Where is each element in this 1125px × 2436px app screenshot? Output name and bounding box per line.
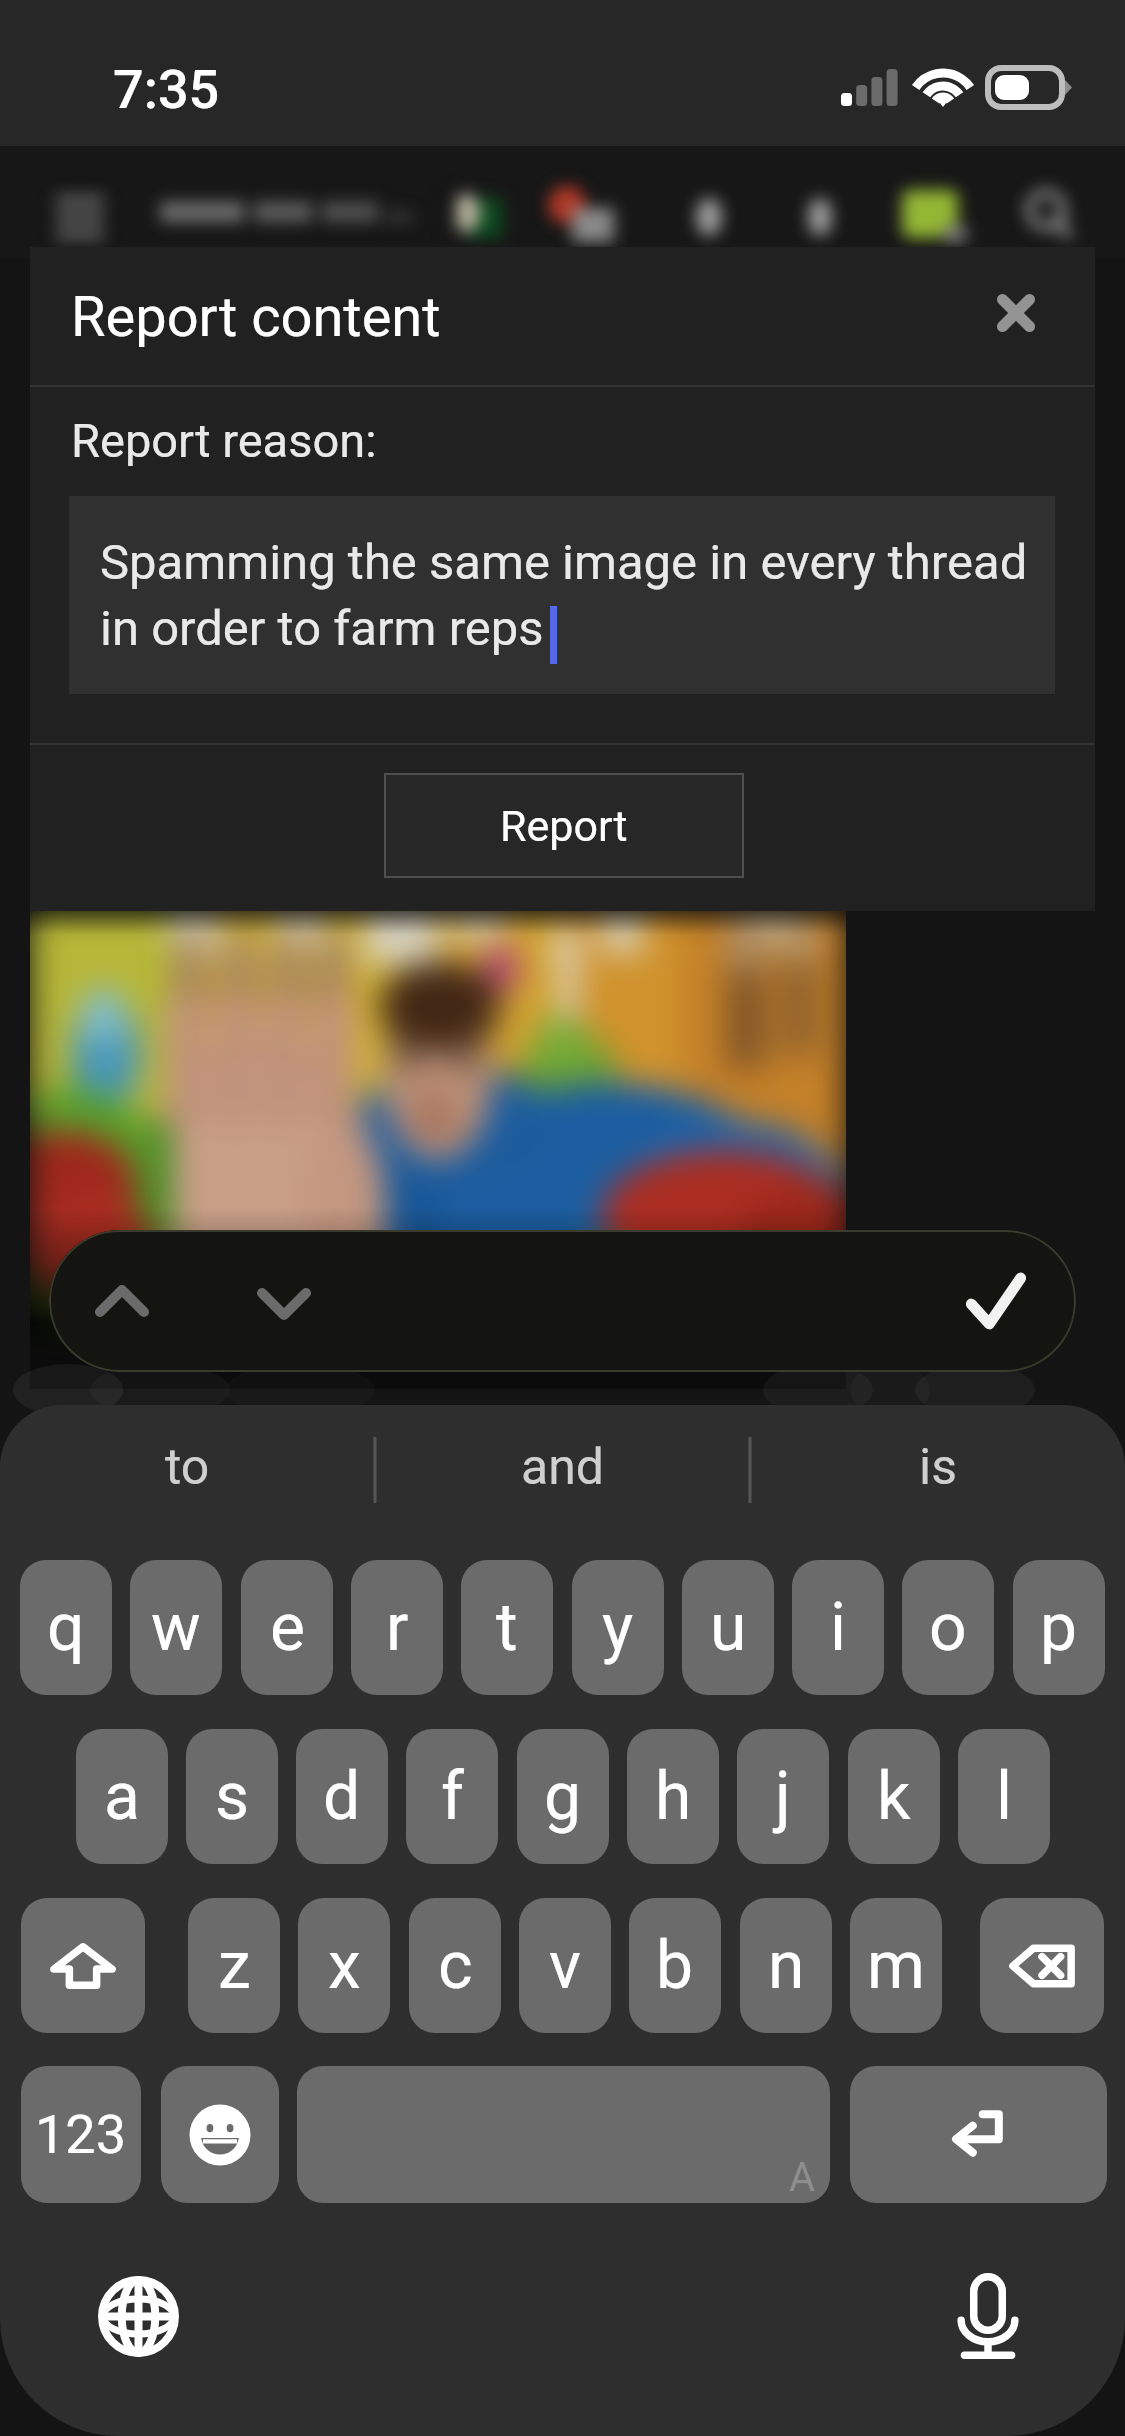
button[interactable]: Shift — [21, 1898, 145, 2033]
button[interactable]: 123 — [21, 2066, 141, 2203]
staticText: A — [789, 2154, 816, 2201]
staticText: g — [544, 1758, 582, 1835]
button[interactable]: e — [241, 1560, 333, 1695]
button[interactable]: a — [76, 1729, 168, 1864]
staticText: y — [602, 1589, 634, 1666]
button[interactable]: f — [406, 1729, 498, 1864]
button[interactable]: Voice input — [933, 2261, 1043, 2371]
button[interactable]: Done — [941, 1246, 1051, 1356]
staticText: o — [929, 1589, 967, 1666]
button[interactable]: x — [298, 1898, 390, 2033]
button[interactable]: Emoji — [161, 2066, 279, 2203]
staticText: h — [655, 1758, 692, 1835]
staticText: d — [323, 1758, 361, 1835]
button[interactable]: n — [740, 1898, 832, 2033]
staticText: v — [549, 1927, 581, 2004]
button[interactable]: p — [1013, 1560, 1105, 1695]
button[interactable]: o — [902, 1560, 994, 1695]
staticText: Report — [500, 801, 628, 851]
button[interactable]: u — [682, 1560, 774, 1695]
staticText: a — [104, 1758, 140, 1835]
button[interactable]: Close — [966, 263, 1066, 363]
button[interactable]: q — [20, 1560, 112, 1695]
button[interactable]: c — [409, 1898, 501, 2033]
button[interactable]: l — [958, 1729, 1050, 1864]
button[interactable]: k — [848, 1729, 940, 1864]
staticText: b — [656, 1927, 694, 2004]
button[interactable]: and — [375, 1405, 750, 1530]
staticText: z — [218, 1927, 251, 2004]
button[interactable]: Next — [229, 1249, 339, 1359]
staticText: 123 — [35, 2103, 127, 2166]
staticText: Report reason: — [71, 413, 377, 468]
staticText: and — [521, 1438, 605, 1497]
button[interactable]: t — [461, 1560, 553, 1695]
button[interactable]: v — [519, 1898, 611, 2033]
staticText: r — [386, 1589, 409, 1666]
staticText: Report content — [71, 284, 441, 350]
button[interactable]: Previous — [67, 1246, 177, 1356]
button[interactable]: b — [629, 1898, 721, 2033]
staticText: is — [919, 1438, 957, 1497]
staticText: to — [165, 1438, 210, 1497]
staticText: m — [867, 1927, 925, 2004]
button[interactable]: Change keyboard — [83, 2261, 193, 2371]
staticText: u — [710, 1589, 747, 1666]
button[interactable]: y — [572, 1560, 664, 1695]
button[interactable]: is — [750, 1405, 1125, 1530]
staticText: Spamming the same image in every thread … — [100, 534, 1030, 657]
staticText: p — [1040, 1589, 1078, 1666]
staticText: n — [768, 1927, 805, 2004]
button[interactable]: r — [351, 1560, 443, 1695]
staticText: w — [151, 1589, 201, 1666]
button[interactable]: to — [0, 1405, 375, 1530]
staticText: c — [438, 1927, 473, 2004]
button[interactable]: Report — [384, 773, 744, 878]
button[interactable]: z — [188, 1898, 280, 2033]
staticText: t — [496, 1589, 518, 1666]
button[interactable]: w — [130, 1560, 222, 1695]
button[interactable]: Enter — [850, 2066, 1107, 2203]
button[interactable]: Backspace — [980, 1898, 1104, 2033]
button[interactable]: i — [792, 1560, 884, 1695]
button[interactable]: j — [737, 1729, 829, 1864]
button[interactable]: g — [517, 1729, 609, 1864]
staticText: l — [996, 1758, 1013, 1835]
staticText: 7:35 — [113, 58, 220, 121]
button[interactable]: Spamming the same image in every thread … — [69, 496, 1055, 694]
button[interactable]: m — [850, 1898, 942, 2033]
button[interactable]: d — [296, 1729, 388, 1864]
staticText: f — [441, 1758, 464, 1835]
staticText: i — [830, 1589, 847, 1666]
staticText: q — [47, 1589, 85, 1666]
button[interactable]: Space — [297, 2066, 830, 2203]
button[interactable]: h — [627, 1729, 719, 1864]
staticText: s — [215, 1758, 250, 1835]
staticText: x — [328, 1927, 361, 2004]
staticText: k — [877, 1758, 911, 1835]
staticText: j — [775, 1758, 791, 1835]
staticText: e — [270, 1589, 305, 1666]
button[interactable]: s — [186, 1729, 278, 1864]
